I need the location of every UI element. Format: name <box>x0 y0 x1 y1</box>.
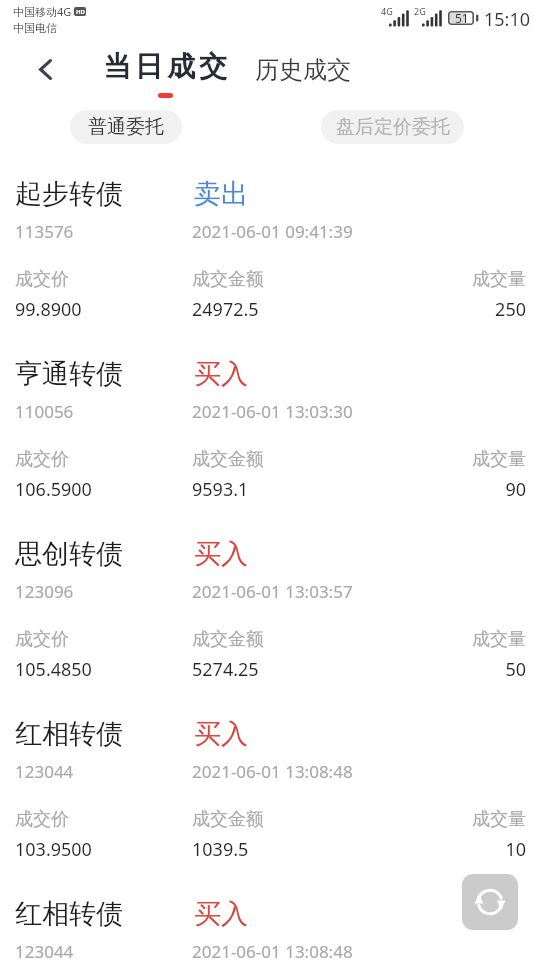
staticText: 51 <box>455 10 469 26</box>
staticText: 2021-06-01 13:08:48 <box>192 940 353 960</box>
staticText: 24972.5 <box>192 297 259 322</box>
staticText: 成交价 <box>15 808 69 831</box>
staticText: 9593.1 <box>192 477 249 502</box>
staticText: 5274.25 <box>192 657 259 682</box>
staticText: 买入 <box>194 357 248 391</box>
staticText: 10 <box>359 837 526 862</box>
button[interactable]: 盘后定价委托 <box>321 110 464 144</box>
button[interactable]: 亨通转债 <box>0 356 540 536</box>
staticText: 成交量 <box>359 628 526 651</box>
staticText: 2G <box>414 5 426 17</box>
staticText: 买入 <box>194 537 248 571</box>
staticText: 亨通转债 <box>15 357 123 391</box>
staticText: 123044 <box>15 760 74 783</box>
staticText: 2021-06-01 09:41:39 <box>192 220 353 243</box>
staticText: 盘后定价委托 <box>336 115 450 139</box>
button[interactable]: 历史成交 <box>255 55 351 85</box>
button[interactable]: 红相转债 <box>0 896 540 960</box>
staticText: 中国电信 <box>13 21 57 35</box>
staticText: 当日成交 <box>101 49 229 84</box>
staticText: 99.8900 <box>15 297 82 322</box>
staticText: 1039.5 <box>192 837 249 862</box>
staticText: 105.4850 <box>15 657 92 682</box>
staticText: 103.9500 <box>15 837 92 862</box>
staticText: 90 <box>359 477 526 502</box>
staticText: 15:10 <box>484 7 531 32</box>
staticText: 普通委托 <box>88 115 164 139</box>
staticText: 起步转债 <box>15 177 123 211</box>
staticText: 成交金额 <box>192 628 264 651</box>
button[interactable]: Back <box>25 49 65 89</box>
staticText: 成交金额 <box>192 808 264 831</box>
staticText: 买入 <box>194 897 248 931</box>
staticText: 106.5900 <box>15 477 92 502</box>
staticText: 4G <box>381 5 393 17</box>
staticText: 成交量 <box>359 448 526 471</box>
staticText: 50 <box>359 657 526 682</box>
staticText: 成交金额 <box>192 448 264 471</box>
button[interactable]: Refresh <box>462 874 518 930</box>
staticText: 成交价 <box>15 448 69 471</box>
staticText: 买入 <box>194 717 248 751</box>
staticText: HD <box>76 8 85 16</box>
button[interactable]: 红相转债 <box>0 716 540 896</box>
staticText: 成交量 <box>359 268 526 291</box>
staticText: 123044 <box>15 940 74 960</box>
staticText: 成交价 <box>15 628 69 651</box>
staticText: 卖出 <box>194 177 248 211</box>
staticText: 中国移动4G <box>13 4 72 19</box>
staticText: 2021-06-01 13:03:30 <box>192 400 353 423</box>
button[interactable]: 起步转债 <box>0 176 540 356</box>
staticText: 123096 <box>15 580 74 603</box>
staticText: 红相转债 <box>15 897 123 931</box>
button[interactable]: 普通委托 <box>70 110 182 144</box>
staticText: 2021-06-01 13:08:48 <box>192 760 353 783</box>
staticText: 250 <box>359 297 526 322</box>
staticText: 思创转债 <box>15 537 123 571</box>
staticText: 成交金额 <box>192 268 264 291</box>
staticText: 113576 <box>15 220 74 243</box>
staticText: 红相转债 <box>15 717 123 751</box>
staticText: 2021-06-01 13:03:57 <box>192 580 353 603</box>
staticText: 成交量 <box>359 808 526 831</box>
staticText: 成交价 <box>15 268 69 291</box>
button[interactable]: 思创转债 <box>0 536 540 716</box>
button[interactable]: 当日成交 <box>94 48 234 102</box>
staticText: 110056 <box>15 400 74 423</box>
